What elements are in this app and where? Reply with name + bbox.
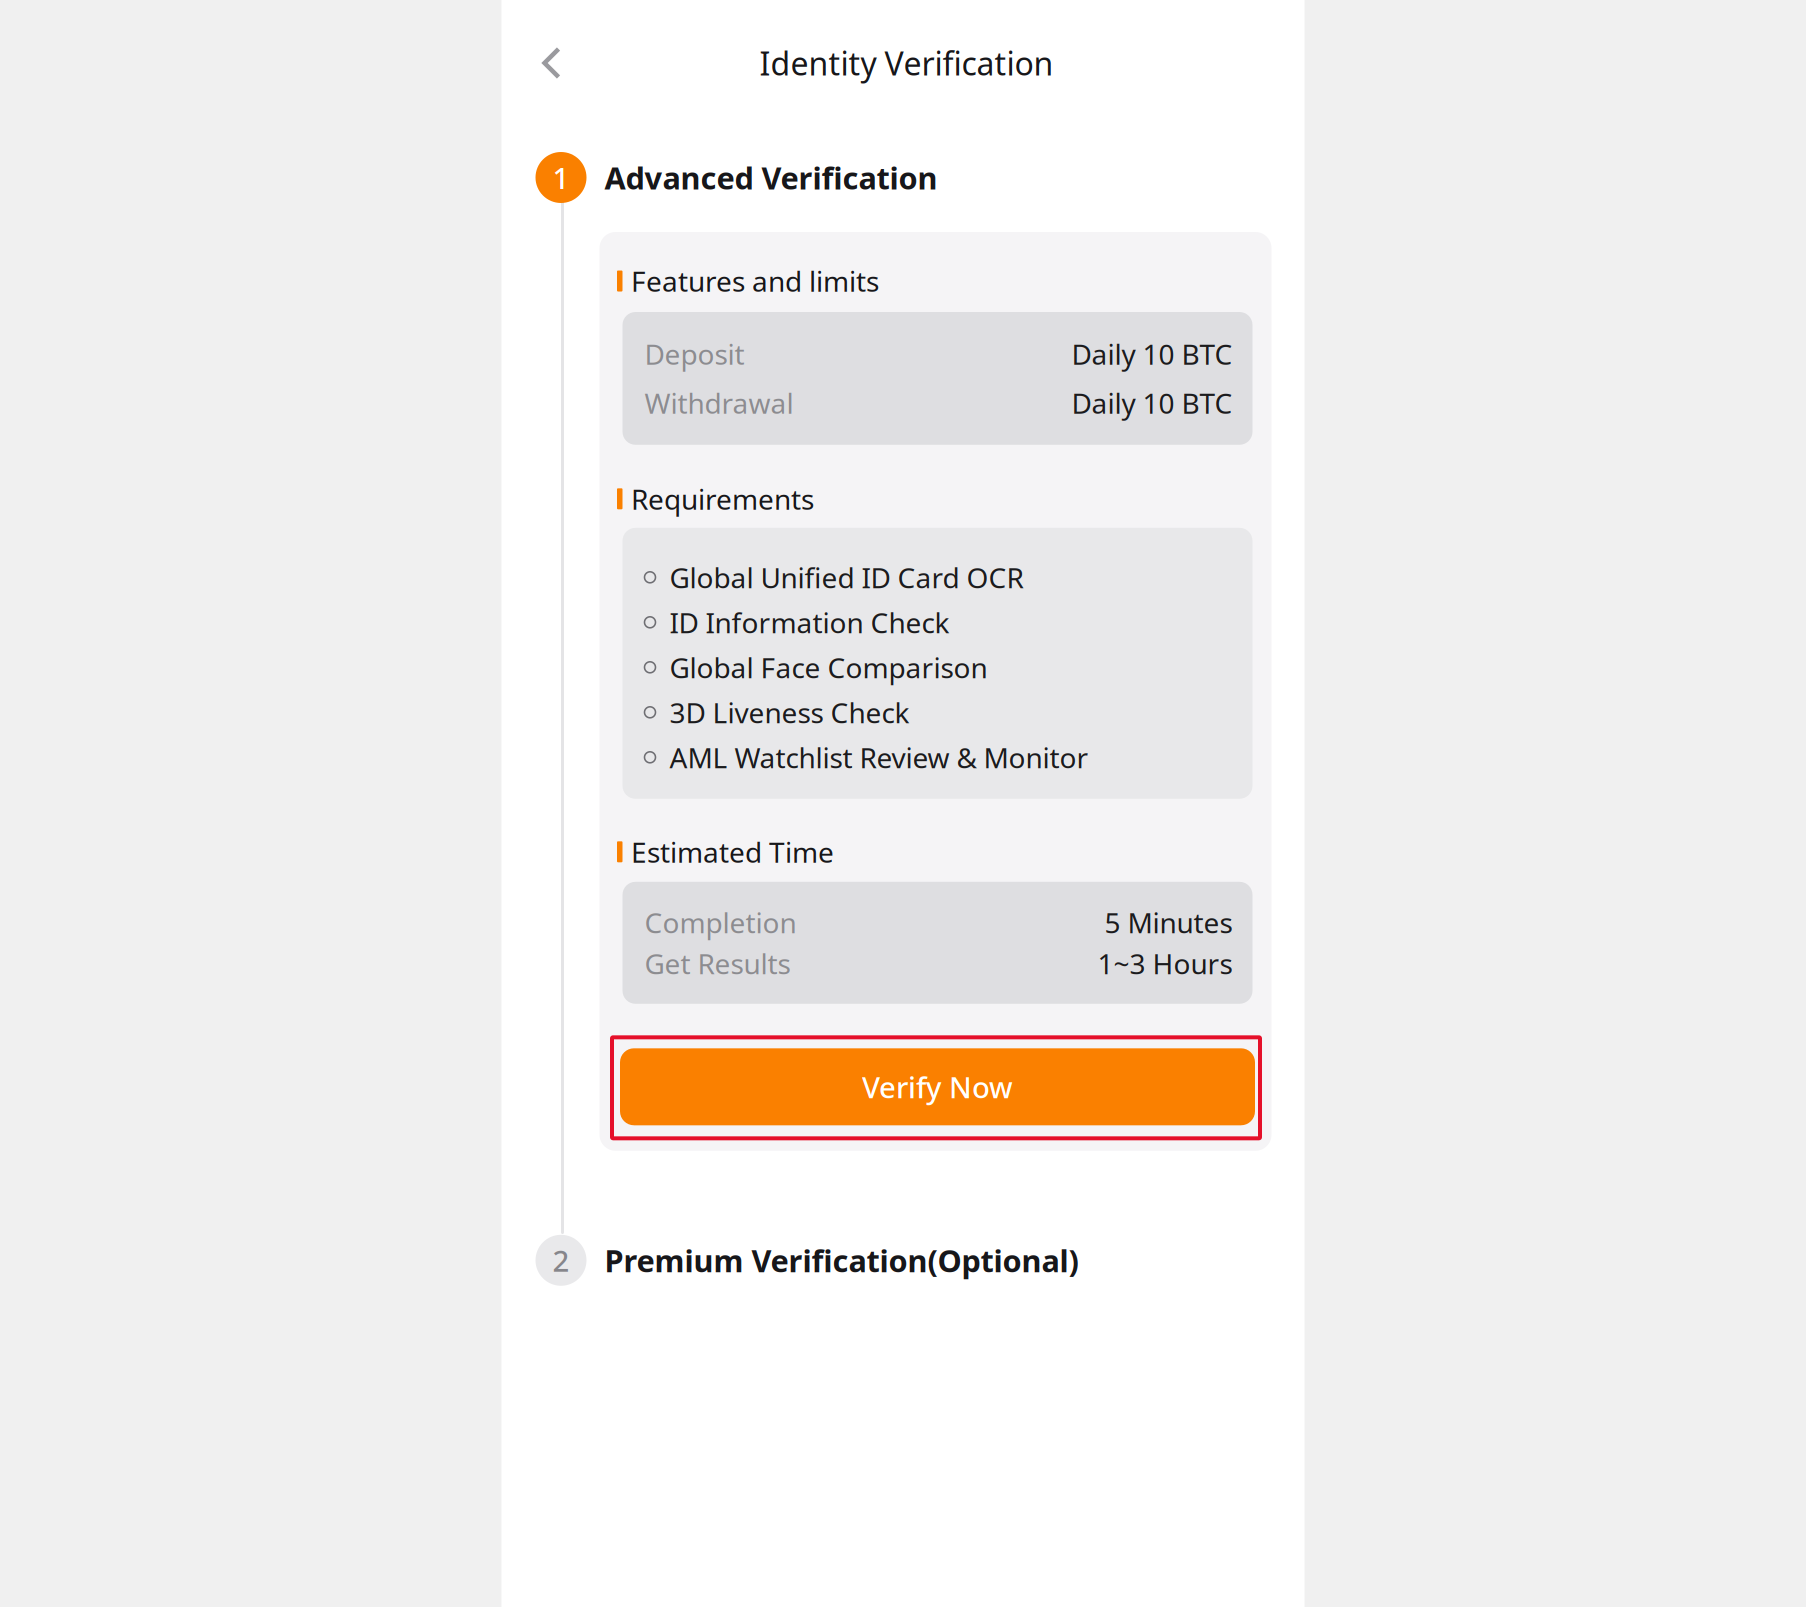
staticText: AML Watchlist Review & Monitor bbox=[669, 739, 1088, 776]
button[interactable]: Verify Now bbox=[620, 1048, 1255, 1125]
staticText: Requirements bbox=[631, 480, 814, 517]
staticText: Completion bbox=[644, 904, 796, 941]
staticText: Global Unified ID Card OCR bbox=[669, 559, 1023, 596]
staticText: Daily 10 BTC bbox=[1071, 384, 1232, 421]
staticText: 1~3 Hours bbox=[1097, 945, 1232, 982]
staticText: 5 Minutes bbox=[1104, 904, 1232, 941]
staticText: Withdrawal bbox=[644, 384, 793, 421]
staticText: Get Results bbox=[644, 945, 790, 982]
staticText: 1 bbox=[552, 158, 569, 197]
staticText: Identity Verification bbox=[759, 42, 1053, 84]
button[interactable]: Back bbox=[521, 33, 581, 93]
staticText: Daily 10 BTC bbox=[1071, 335, 1232, 372]
staticText: Global Face Comparison bbox=[669, 649, 987, 686]
staticText: Deposit bbox=[644, 335, 744, 372]
staticText: Advanced Verification bbox=[604, 157, 937, 198]
staticText: ID Information Check bbox=[669, 604, 949, 641]
staticText: Features and limits bbox=[631, 262, 879, 300]
staticText: 2 bbox=[552, 1241, 569, 1280]
staticText: Estimated Time bbox=[631, 833, 834, 870]
staticText: Premium Verification(Optional) bbox=[604, 1240, 1078, 1281]
staticText: 3D Liveness Check bbox=[669, 694, 909, 731]
staticText: Verify Now bbox=[862, 1067, 1013, 1106]
